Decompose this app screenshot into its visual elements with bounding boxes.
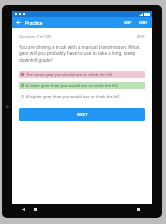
staticText: A lower gear than you would use to climb… [26, 83, 119, 88]
button[interactable]: A lower gear than you would use to climb… [19, 82, 145, 89]
button[interactable]: Home [32, 206, 39, 213]
button[interactable]: Recent apps [135, 206, 142, 213]
button[interactable]: The same gear you would use to climb the… [19, 71, 145, 78]
staticText: NEXT [77, 112, 88, 118]
staticText: Practice [25, 20, 43, 26]
staticText: SKIP [124, 20, 132, 25]
button[interactable]: Back [20, 206, 27, 213]
staticText: HINT [139, 20, 148, 25]
staticText: 80% [137, 34, 145, 39]
button[interactable]: SKIP [122, 19, 134, 26]
staticText: Question 3 of 200 [19, 34, 52, 39]
staticText: You are driving a truck with a manual tr… [19, 44, 145, 63]
button[interactable]: NEXT [19, 108, 145, 121]
button[interactable]: HINT [137, 19, 150, 26]
button[interactable]: A higher gear than you would use to clim… [19, 93, 145, 100]
button[interactable]: Back [14, 18, 23, 27]
staticText: A higher gear than you would use to clim… [26, 94, 121, 99]
staticText: The same gear you would use to climb the… [26, 72, 114, 77]
